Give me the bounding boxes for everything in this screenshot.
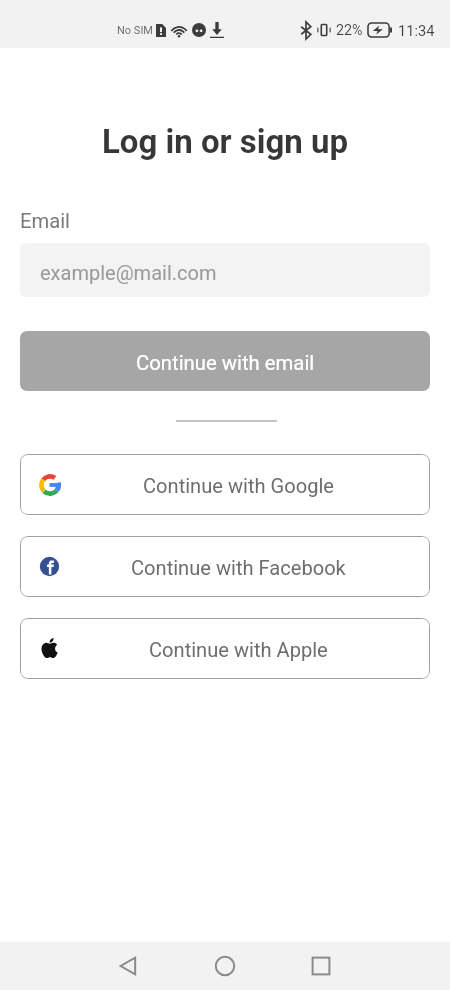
button[interactable]: example@mail.com: [20, 243, 430, 297]
staticText: Continue with Google: [143, 474, 334, 498]
staticText: Email: [20, 209, 70, 233]
button[interactable]: Home: [193, 942, 257, 990]
button[interactable]: Continue with Apple: [20, 618, 430, 679]
staticText: 22%: [336, 22, 363, 39]
button[interactable]: Recents: [289, 942, 353, 990]
button[interactable]: Continue with Google: [20, 454, 430, 515]
button[interactable]: Continue with email: [20, 331, 430, 391]
staticText: example@mail.com: [40, 261, 217, 284]
staticText: No SIM: [117, 24, 153, 37]
staticText: Continue with email: [136, 351, 315, 375]
staticText: 11:34: [398, 22, 435, 39]
staticText: Log in or sign up: [0, 122, 450, 161]
staticText: Continue with Apple: [149, 638, 328, 662]
button[interactable]: Continue with Facebook: [20, 536, 430, 597]
staticText: Continue with Facebook: [131, 556, 346, 580]
button[interactable]: Back: [97, 942, 161, 990]
